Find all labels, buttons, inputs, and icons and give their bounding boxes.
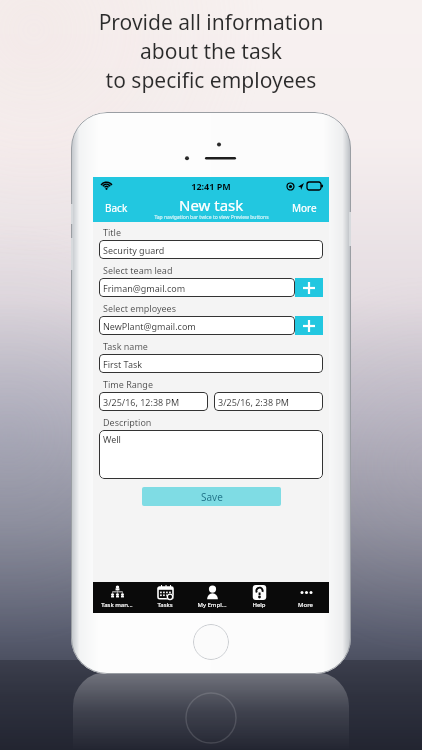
button[interactable]: First Task [99, 354, 323, 373]
staticText: More [298, 601, 313, 609]
button[interactable]: Security guard [99, 240, 323, 259]
staticText: to specific employees [0, 66, 422, 95]
staticText: Time Range [103, 378, 153, 390]
button[interactable]: Well [99, 430, 323, 479]
staticText: Task man... [101, 601, 133, 609]
staticText: Back [105, 201, 128, 215]
staticText: Provide all information [0, 8, 422, 37]
button[interactable]: Tasks [141, 582, 188, 613]
staticText: More [292, 201, 317, 215]
button[interactable]: 3/25/16, 12:38 PM [99, 392, 208, 411]
staticText: Help [252, 601, 266, 609]
button[interactable]: Save [142, 487, 281, 506]
staticText: Tap navigation bar twice to view Preview… [154, 214, 269, 221]
button[interactable]: Home [193, 624, 229, 660]
staticText: Security guard [103, 244, 165, 256]
staticText: NewPlant@gmail.com [103, 320, 196, 332]
button[interactable]: NewPlant@gmail.com [99, 316, 295, 335]
button[interactable]: More [286, 197, 323, 219]
staticText: Title [103, 226, 121, 238]
button[interactable]: Task man... [93, 582, 141, 613]
staticText: Save [201, 490, 223, 504]
button[interactable]: Friman@gmail.com [99, 278, 295, 297]
staticText: 3/25/16, 2:38 PM [218, 396, 289, 408]
button[interactable]: Back [99, 197, 134, 219]
staticText: 12:41 PM [191, 180, 231, 192]
staticText: Select employees [103, 302, 176, 314]
staticText: My Empl... [197, 601, 227, 609]
button[interactable]: Add [295, 316, 323, 335]
staticText: Select team lead [103, 264, 173, 276]
button[interactable]: 3/25/16, 2:38 PM [214, 392, 323, 411]
button[interactable]: Add [295, 278, 323, 297]
staticText: Task name [103, 340, 148, 352]
button[interactable]: My Empl... [188, 582, 235, 613]
button[interactable]: More [282, 582, 329, 613]
staticText: Tasks [157, 601, 173, 609]
staticText: First Task [103, 358, 143, 370]
staticText: Description [103, 416, 152, 428]
staticText: 3/25/16, 12:38 PM [103, 396, 180, 408]
staticText: about the task [0, 37, 422, 66]
staticText: New task [179, 195, 244, 215]
staticText: Well [103, 433, 121, 445]
button[interactable]: Help [235, 582, 282, 613]
staticText: Friman@gmail.com [103, 282, 186, 294]
